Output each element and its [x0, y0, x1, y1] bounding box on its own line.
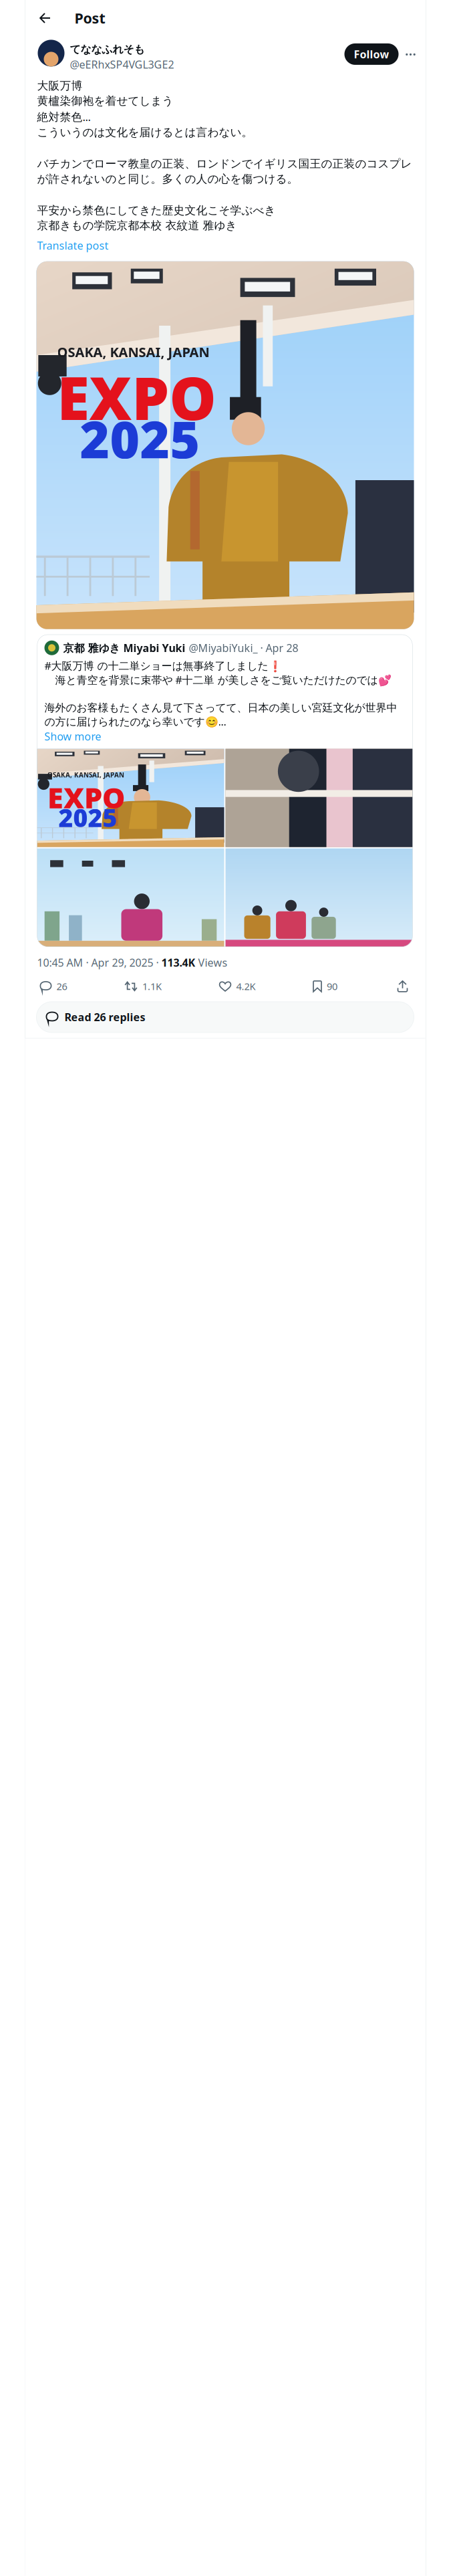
staticText: Show more: [44, 729, 101, 743]
staticText: 2025: [80, 405, 200, 472]
button[interactable]: Follow: [344, 43, 399, 65]
staticText: Translate post: [37, 238, 109, 253]
staticText: 2025: [59, 801, 117, 834]
staticText: @MiyabiYuki_ · Apr 28: [189, 641, 298, 655]
staticText: 26: [56, 980, 67, 993]
button[interactable]: Profile photo: [38, 40, 64, 67]
staticText: 京都 雅ゆき Miyabi Yuki: [63, 641, 185, 655]
staticText: @eERhxSP4VGL3GE2: [70, 57, 174, 71]
button[interactable]: 京都 雅ゆき Miyabi Yuki: [25, 629, 425, 947]
button[interactable]: Back: [34, 6, 56, 30]
staticText: OSAKA, KANSAI, JAPAN: [47, 771, 124, 779]
button[interactable]: 90: [313, 976, 337, 996]
button[interactable]: More: [401, 44, 420, 65]
staticText: Follow: [354, 47, 389, 61]
button[interactable]: Read 26 replies: [25, 996, 425, 1038]
staticText: Read 26 replies: [64, 1010, 145, 1024]
staticText: Views: [198, 955, 228, 970]
staticText: Post: [74, 9, 105, 27]
button[interactable]: 4.2K: [219, 976, 256, 996]
staticText: 大阪万博 黄櫨染御袍を着せてしまう 絶対禁色... こういうのは文化を届けるとは…: [37, 79, 412, 232]
button[interactable]: Share: [395, 976, 411, 996]
staticText: OSAKA, KANSAI, JAPAN: [57, 343, 210, 361]
button[interactable]: Post image: [25, 253, 426, 629]
button[interactable]: Translate post: [37, 232, 109, 253]
staticText: 10:45 AM · Apr 29, 2025 ·: [37, 955, 161, 970]
staticText: 4.2K: [236, 980, 256, 993]
staticText: 1.1K: [142, 980, 162, 993]
button[interactable]: 1.1K: [124, 976, 162, 996]
staticText: #大阪万博 の十二単ショーは無事終了しました❗️ 海と青空を背景に束帯や #十二…: [44, 659, 397, 729]
staticText: 113.4K: [161, 955, 198, 970]
staticText: てななふれそも: [70, 43, 145, 56]
staticText: EXPO: [47, 778, 125, 816]
staticText: EXPO: [57, 358, 216, 436]
button[interactable]: 26: [40, 976, 67, 996]
staticText: 90: [327, 980, 337, 993]
